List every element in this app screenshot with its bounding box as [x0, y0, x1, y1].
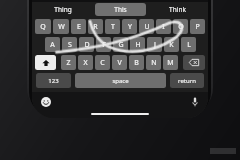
staticText: X	[83, 58, 88, 68]
button[interactable]: X	[78, 55, 93, 70]
staticText: K	[169, 40, 174, 50]
staticText: M	[167, 58, 174, 68]
button[interactable]: K	[164, 37, 179, 52]
button[interactable]: N	[146, 55, 161, 70]
staticText: Thing	[54, 5, 72, 14]
staticText: U	[144, 22, 150, 32]
button[interactable]: Dictation	[192, 97, 198, 107]
button[interactable]: T	[105, 19, 120, 34]
button[interactable]: E	[71, 19, 86, 34]
staticText: C	[100, 58, 105, 68]
staticText: L	[187, 40, 191, 50]
button[interactable]: V	[112, 55, 127, 70]
button[interactable]: Emoji	[41, 97, 51, 107]
button[interactable]: Y	[122, 19, 137, 34]
button[interactable]: W	[53, 19, 69, 34]
staticText: H	[135, 40, 141, 50]
button[interactable]: Shift	[35, 55, 56, 70]
button[interactable]: R	[88, 19, 103, 34]
button[interactable]: J	[147, 37, 162, 52]
staticText: space	[112, 77, 129, 85]
staticText: W	[58, 22, 65, 32]
staticText: Q	[40, 22, 46, 32]
staticText: F	[102, 40, 106, 50]
staticText: P	[195, 22, 200, 32]
button[interactable]: G	[113, 37, 128, 52]
staticText: return	[178, 77, 196, 85]
staticText: N	[151, 58, 157, 68]
staticText: D	[84, 40, 90, 50]
button[interactable]: O	[173, 19, 188, 34]
button[interactable]: Backspace	[183, 55, 205, 70]
staticText: S	[68, 40, 72, 50]
staticText: G	[118, 40, 124, 50]
button[interactable]: Q	[35, 19, 51, 34]
staticText: A	[50, 40, 55, 50]
staticText: I	[162, 22, 165, 32]
staticText: Think	[169, 5, 186, 14]
button[interactable]: A	[45, 37, 60, 52]
staticText: V	[117, 58, 122, 68]
staticText: 123	[48, 77, 59, 85]
staticText: J	[154, 40, 156, 50]
staticText: Y	[128, 22, 132, 32]
button[interactable]: Thing	[37, 3, 89, 16]
button[interactable]: M	[163, 55, 178, 70]
button[interactable]: This	[95, 3, 146, 16]
button[interactable]: S	[62, 37, 77, 52]
button[interactable]: F	[96, 37, 111, 52]
staticText: O	[178, 22, 184, 32]
button[interactable]: B	[129, 55, 144, 70]
button[interactable]: P	[190, 19, 205, 34]
button[interactable]: H	[130, 37, 145, 52]
staticText: Z	[66, 58, 71, 68]
staticText: R	[93, 22, 98, 32]
button[interactable]: return	[170, 73, 204, 88]
button[interactable]: Z	[61, 55, 76, 70]
staticText: T	[111, 22, 115, 32]
button[interactable]: D	[79, 37, 94, 52]
button[interactable]: space	[75, 73, 166, 88]
button[interactable]: L	[181, 37, 196, 52]
button[interactable]: 123	[36, 73, 71, 88]
staticText: B	[134, 58, 139, 68]
button[interactable]: I	[156, 19, 171, 34]
staticText: This	[114, 5, 127, 14]
button[interactable]: U	[139, 19, 154, 34]
button[interactable]: C	[95, 55, 110, 70]
button[interactable]: Think	[152, 3, 203, 16]
staticText: E	[77, 22, 81, 32]
